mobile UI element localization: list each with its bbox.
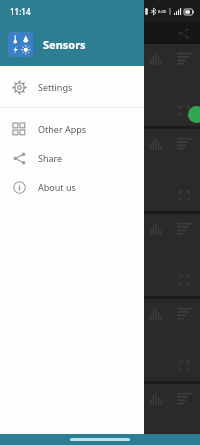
staticText: Settings xyxy=(38,81,73,93)
button[interactable]: Settings xyxy=(0,72,144,101)
staticText: 11:14 xyxy=(10,6,31,17)
staticText: Sensors xyxy=(43,37,86,52)
staticText: 0.00 xyxy=(158,9,166,14)
button[interactable]: Add xyxy=(188,106,200,123)
staticText: Other Apps xyxy=(38,123,87,135)
button[interactable]: Other Apps xyxy=(0,114,144,143)
button[interactable]: Share xyxy=(0,143,144,172)
button[interactable] xyxy=(0,129,200,211)
staticText: About us xyxy=(38,181,76,193)
button[interactable] xyxy=(0,384,200,445)
button[interactable]: Share xyxy=(174,24,192,42)
staticText: Share xyxy=(38,152,63,164)
button[interactable]: About us xyxy=(0,172,144,201)
button[interactable]: Sensors xyxy=(0,22,144,66)
button[interactable] xyxy=(0,44,200,126)
button[interactable] xyxy=(0,214,200,296)
button[interactable] xyxy=(0,299,200,381)
